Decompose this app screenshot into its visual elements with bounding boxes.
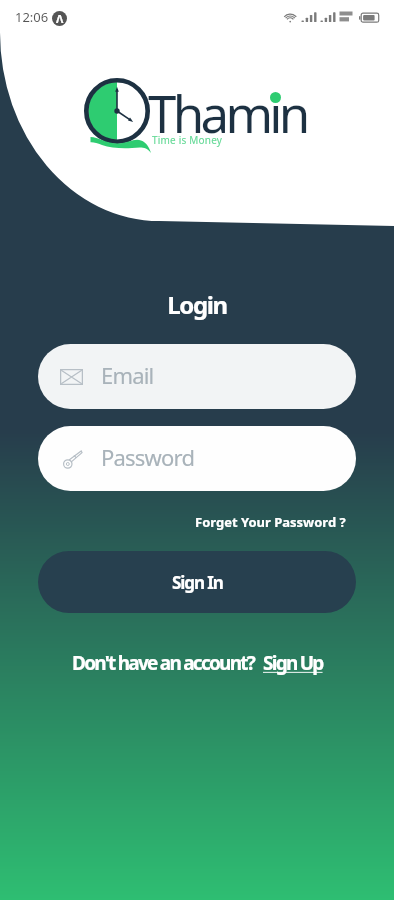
staticText: Password bbox=[101, 442, 195, 472]
staticText: Login bbox=[38, 288, 356, 321]
staticText: Thamin bbox=[148, 78, 307, 147]
other: Password bbox=[60, 449, 83, 469]
button[interactable]: Sign In bbox=[38, 551, 356, 613]
staticText: Sign In bbox=[172, 571, 223, 594]
staticText: Λ bbox=[56, 11, 64, 26]
other: Email bbox=[60, 369, 83, 385]
button[interactable]: Forget Your Password ? bbox=[195, 513, 356, 531]
button[interactable]: Password bbox=[38, 426, 356, 491]
button[interactable]: Sign Up bbox=[263, 650, 323, 676]
button[interactable]: Email bbox=[38, 344, 356, 409]
staticText: Email bbox=[101, 360, 154, 390]
staticText: Time is Money bbox=[152, 133, 223, 147]
staticText: Don't have an account? bbox=[72, 650, 255, 676]
staticText: 12:06 bbox=[15, 8, 49, 26]
